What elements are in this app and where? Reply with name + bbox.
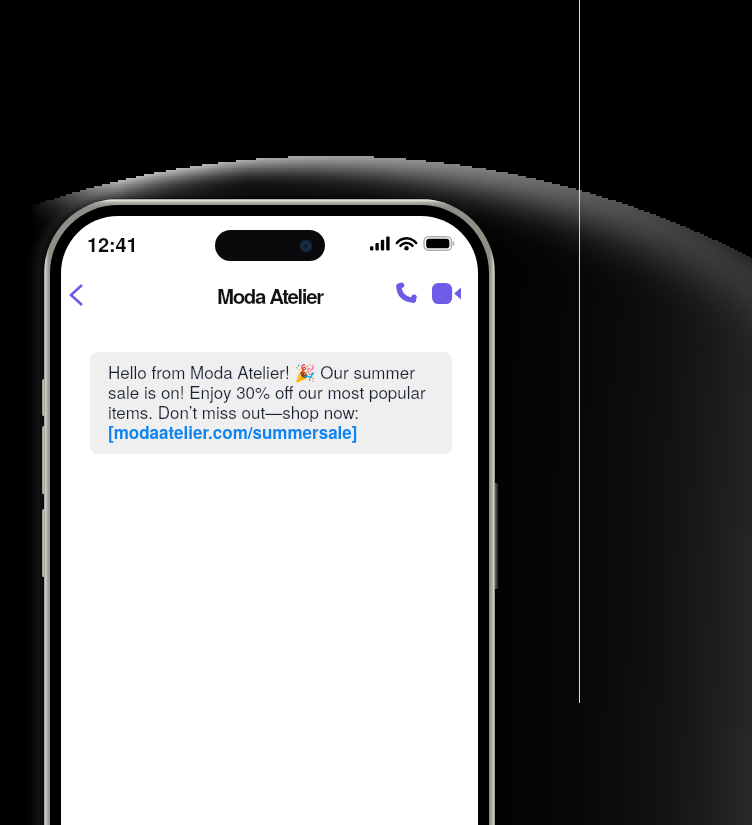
button[interactable]: Call [384, 271, 428, 315]
button[interactable]: Hello from Moda Atelier! 🎉 Our summer sa… [90, 352, 452, 454]
button[interactable]: Back [61, 273, 98, 317]
staticText: Hello from Moda Atelier! 🎉 Our summer sa… [108, 359, 438, 444]
button[interactable]: Video call [424, 271, 468, 315]
staticText: 12:41 [87, 229, 138, 258]
staticText: Moda Atelier [217, 281, 323, 310]
